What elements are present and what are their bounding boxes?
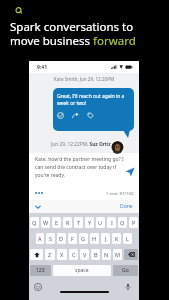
button[interactable]: V — [80, 249, 89, 260]
button[interactable]: M — [113, 249, 122, 260]
button[interactable]: F — [68, 233, 77, 244]
staticText: K — [115, 235, 119, 242]
button[interactable]: More options — [35, 192, 43, 194]
button[interactable]: Y — [85, 217, 94, 228]
button[interactable]: J — [101, 233, 110, 244]
button[interactable]: U — [96, 217, 105, 228]
staticText: space — [75, 267, 89, 274]
button[interactable]: D — [57, 233, 66, 244]
staticText: X — [60, 251, 64, 258]
button[interactable]: W — [41, 217, 50, 228]
staticText: H — [92, 235, 97, 242]
staticText: D — [59, 235, 64, 242]
button[interactable]: Backspace — [124, 249, 138, 260]
button[interactable]: R — [63, 217, 72, 228]
button[interactable]: Z — [45, 249, 55, 260]
other: Quiq logo — [15, 7, 23, 15]
staticText: O — [120, 219, 125, 226]
staticText: R — [66, 219, 70, 226]
button[interactable]: S — [46, 233, 55, 244]
staticText: Kate Smith, Jun 29, 12:20PM — [29, 76, 139, 82]
button[interactable]: A — [36, 233, 44, 244]
button[interactable]: Go — [113, 265, 138, 276]
button[interactable]: L — [123, 233, 132, 244]
staticText: I — [111, 219, 113, 226]
button[interactable]: K — [112, 233, 121, 244]
button[interactable]: Dictate — [123, 282, 132, 291]
staticText: W — [43, 219, 49, 226]
button[interactable]: G — [79, 233, 88, 244]
staticText: J — [105, 235, 107, 242]
staticText: C — [72, 251, 76, 258]
staticText: Y — [88, 219, 92, 226]
staticText: A — [38, 235, 42, 242]
staticText: M — [115, 251, 120, 258]
staticText: Kate, how'd the partner meeting go? I ca… — [35, 156, 124, 178]
staticText: Spark conversations to move business for… — [10, 19, 136, 48]
button[interactable]: X — [57, 249, 67, 260]
button[interactable]: Emoji — [33, 282, 42, 291]
button[interactable]: B — [91, 249, 100, 260]
button[interactable]: Done — [120, 203, 133, 210]
staticText: 1 text: 87/160 — [106, 190, 134, 196]
staticText: 123 — [36, 267, 45, 274]
staticText: U — [98, 219, 103, 226]
button[interactable]: H — [90, 233, 99, 244]
staticText: T — [77, 219, 81, 226]
button[interactable]: O — [118, 217, 127, 228]
button[interactable]: P — [129, 217, 138, 228]
button[interactable]: T — [74, 217, 83, 228]
staticText: L — [126, 235, 129, 242]
button[interactable]: N — [102, 249, 111, 260]
staticText: N — [104, 251, 109, 258]
button[interactable]: E — [52, 217, 61, 228]
button[interactable]: Q — [30, 217, 39, 228]
staticText: Go — [122, 267, 129, 274]
staticText: S — [49, 235, 53, 242]
button[interactable]: I — [107, 217, 116, 228]
staticText: Z — [48, 251, 52, 258]
staticText: V — [83, 251, 87, 258]
staticText: P — [132, 219, 136, 226]
button[interactable]: Great, I'll reach out again in a week or… — [53, 88, 134, 131]
staticText: F — [71, 235, 74, 242]
button[interactable]: Hide keyboard — [34, 203, 42, 211]
button[interactable]: C — [69, 249, 78, 260]
staticText: Q — [32, 219, 37, 226]
staticText: G — [81, 235, 86, 242]
staticText: 9:41 — [37, 64, 47, 71]
staticText: B — [94, 251, 98, 258]
staticText: E — [55, 219, 59, 226]
button[interactable]: Send — [125, 167, 135, 177]
button[interactable]: 123 — [30, 265, 51, 276]
staticText: Great, I'll reach out again in a week or… — [57, 93, 125, 107]
staticText: Jun 29, 12:22PM, Suz Ortiz — [51, 141, 111, 148]
button[interactable]: Shift — [30, 249, 43, 260]
button[interactable]: space — [53, 265, 111, 276]
